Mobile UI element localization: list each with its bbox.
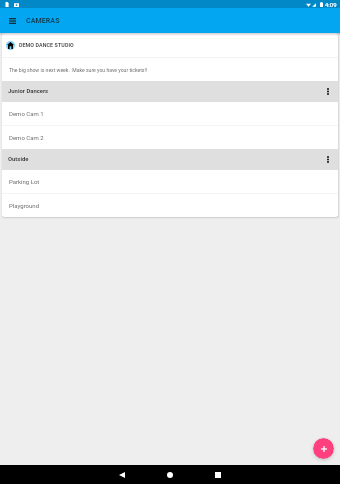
button[interactable]: DEMO DANCE STUDIO bbox=[2, 33, 338, 57]
staticText: Playground bbox=[9, 202, 40, 209]
button[interactable]: Junior Dancers bbox=[2, 81, 338, 102]
button[interactable]: Demo Cam 2 bbox=[2, 126, 338, 149]
button[interactable]: Parking Lot bbox=[2, 170, 338, 193]
button[interactable]: Playground bbox=[2, 194, 338, 217]
button[interactable]: Recent apps bbox=[194, 465, 242, 484]
button[interactable]: More options bbox=[317, 81, 338, 102]
staticText: Parking Lot bbox=[9, 178, 40, 185]
staticText: DEMO DANCE STUDIO bbox=[19, 42, 74, 48]
staticText: Demo Cam 1 bbox=[9, 110, 44, 117]
staticText: Demo Cam 2 bbox=[9, 134, 44, 141]
staticText: Junior Dancers bbox=[8, 88, 49, 95]
button[interactable]: Demo Cam 1 bbox=[2, 102, 338, 125]
button[interactable]: Back bbox=[98, 465, 146, 484]
button[interactable]: Home bbox=[146, 465, 194, 484]
button[interactable]: Add camera bbox=[313, 438, 334, 459]
button[interactable]: More options bbox=[317, 149, 338, 170]
staticText: The big show is next week. Make sure you… bbox=[9, 67, 148, 73]
staticText: Outside bbox=[8, 156, 29, 163]
staticText: CAMERAS bbox=[26, 17, 60, 25]
button[interactable]: Outside bbox=[2, 149, 338, 170]
staticText: 4:09 bbox=[325, 1, 337, 8]
button[interactable]: Open navigation drawer bbox=[0, 8, 25, 33]
